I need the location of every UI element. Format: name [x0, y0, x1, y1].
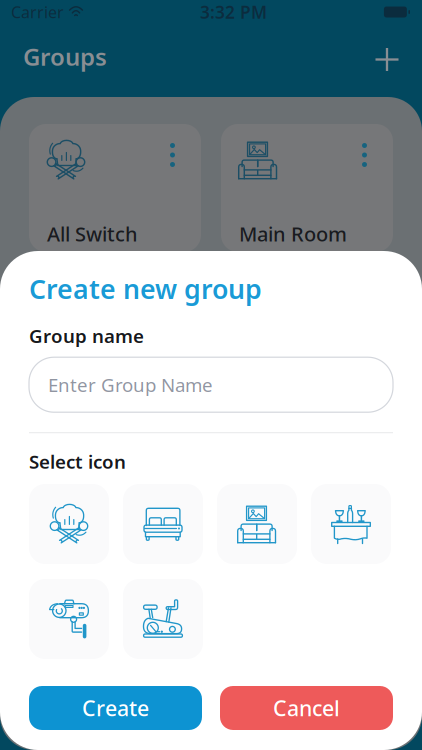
button[interactable]: Select icon [217, 484, 297, 564]
staticText: All Switch [47, 220, 138, 247]
button[interactable]: Select icon [29, 579, 109, 659]
staticText: Enter Group Name [48, 372, 213, 397]
staticText: Groups [23, 41, 107, 72]
staticText: Group name [29, 323, 144, 348]
button[interactable]: Cancel [220, 686, 393, 730]
staticText: Cancel [273, 694, 340, 722]
button[interactable]: Select icon [123, 579, 203, 659]
staticText: 3:32 PM [200, 0, 267, 23]
button[interactable]: Add group [365, 37, 409, 81]
staticText: Carrier [11, 1, 64, 23]
button[interactable]: Select icon [123, 484, 203, 564]
button[interactable]: Select icon [311, 484, 391, 564]
staticText: Select icon [29, 449, 126, 474]
button[interactable]: Select icon [29, 484, 109, 564]
staticText: Main Room [239, 220, 347, 247]
staticText: Create new group [29, 271, 262, 306]
button[interactable]: Create [29, 686, 202, 730]
staticText: Create [82, 694, 149, 722]
